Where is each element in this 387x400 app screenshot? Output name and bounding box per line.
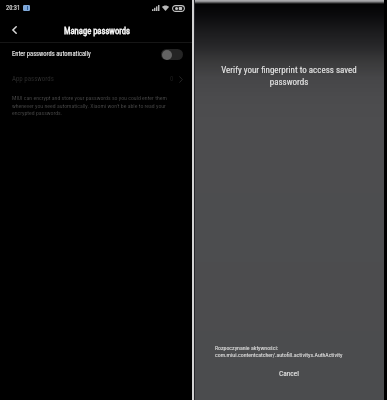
staticText: Rozpoczynanie aktywności: com.miui.conte… [215,345,343,359]
staticText: 20:31 [6,4,21,12]
button[interactable]: Cancel [267,366,311,381]
staticText: Manage passwords [64,26,130,36]
staticText: Enter passwords automatically [12,50,91,58]
button[interactable]: Back [6,21,23,38]
staticText: Verify your fingerprint to access saved … [216,65,362,87]
staticText: 0 [170,75,174,83]
staticText: Cancel [279,369,299,378]
staticText: MIUI can encrypt and store your password… [12,95,170,116]
button[interactable]: App passwords [0,69,192,89]
staticText: App passwords [12,75,54,83]
button[interactable]: Enter passwords automatically [0,43,192,65]
